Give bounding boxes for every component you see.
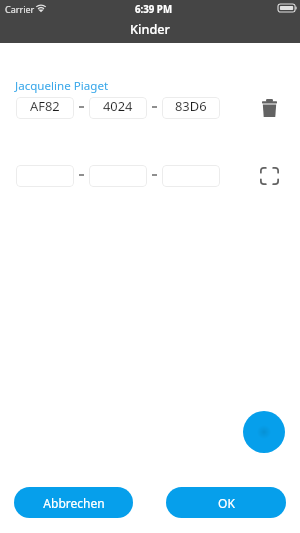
button[interactable] bbox=[89, 165, 147, 187]
button[interactable] bbox=[16, 165, 74, 187]
staticText: 83D6 bbox=[175, 97, 207, 115]
button[interactable]: AF82 bbox=[16, 97, 74, 119]
button[interactable]: 4024 bbox=[89, 97, 147, 119]
staticText: OK bbox=[218, 495, 235, 511]
button[interactable] bbox=[162, 165, 220, 187]
button[interactable]: OK bbox=[166, 487, 286, 518]
button[interactable]: 83D6 bbox=[162, 97, 220, 119]
staticText: 6:39 PM bbox=[135, 3, 173, 16]
staticText: Kinder bbox=[130, 20, 170, 37]
staticText: Abbrechen bbox=[43, 495, 105, 511]
staticText: 4024 bbox=[103, 97, 133, 115]
staticText: AF82 bbox=[30, 97, 60, 115]
button[interactable]: Abbrechen bbox=[14, 487, 133, 518]
button[interactable]: Add bbox=[243, 411, 285, 453]
staticText: Carrier bbox=[5, 3, 35, 13]
button[interactable]: Scan code bbox=[262, 164, 286, 188]
button[interactable]: Delete bbox=[262, 96, 286, 120]
staticText: Jacqueline Piaget bbox=[15, 78, 109, 94]
